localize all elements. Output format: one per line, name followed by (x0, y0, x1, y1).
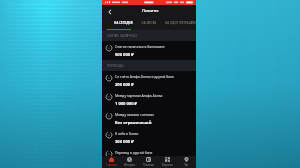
staticText: К себе в Банке (115, 131, 139, 136)
staticText: ПЕРЕВОДЫ (107, 64, 124, 68)
staticText: СНЯТИЕ НАЛИЧНЫХ (107, 34, 137, 38)
button[interactable]: Снятие наличных в банкомате (102, 41, 196, 60)
staticText: История (124, 163, 135, 167)
staticText: Снятие наличных в банкомате (115, 44, 165, 49)
button[interactable]: Между картами Альфа-Банка (102, 90, 196, 109)
staticText: Перевод в другой банк (115, 150, 153, 155)
staticText: 200 000 ₽ (115, 82, 134, 88)
staticText: НА ОДНУ ОПЕРАЦИЮ (165, 21, 196, 25)
button[interactable]: Между своими счетами (102, 109, 196, 128)
button[interactable]: НА СЕГОДНЯ (111, 17, 135, 30)
staticText: Между своими счетами (115, 112, 154, 117)
staticText: Чат (184, 163, 189, 167)
staticText: Лимиты (142, 8, 159, 14)
button[interactable]: Главный (102, 156, 120, 168)
button[interactable]: Перевод в другой банк (102, 147, 196, 156)
staticText: 1 000 000 ₽ (115, 101, 138, 107)
button[interactable]: Платежи (139, 156, 158, 168)
staticText: НА МЕСЯЦ (141, 21, 157, 25)
button[interactable]: К себе в Банке (102, 128, 196, 147)
button[interactable]: Со счёта Альфа-Банка в другой банк (102, 71, 196, 90)
staticText: Платежи (143, 163, 154, 167)
button[interactable]: История (120, 156, 139, 168)
staticText: Главный (106, 163, 117, 167)
staticText: Витрина (162, 163, 173, 167)
staticText: НА СЕГОДНЯ (114, 21, 133, 25)
staticText: Без ограничений (115, 120, 152, 126)
button[interactable]: НА МЕСЯЦ (139, 17, 158, 30)
staticText: Между картами Альфа-Банка (115, 93, 163, 98)
button[interactable]: НА ОДНУ ОПЕРАЦИЮ (164, 17, 196, 30)
button[interactable]: Назад (105, 7, 114, 16)
staticText: 500 000 ₽ (115, 52, 134, 58)
button[interactable]: Витрина (158, 156, 177, 168)
staticText: 300 000 ₽ (115, 139, 134, 145)
staticText: Со счёта Альфа-Банка в другой банк (115, 74, 174, 79)
button[interactable]: Чат (177, 156, 196, 168)
